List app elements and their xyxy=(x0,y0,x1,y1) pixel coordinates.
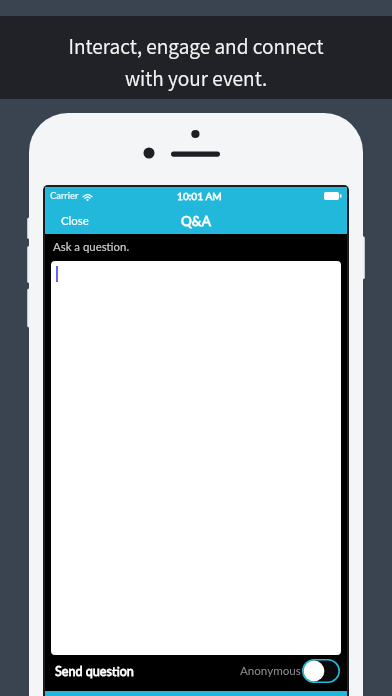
staticText: 10:01 AM xyxy=(177,190,222,202)
button[interactable]: Close xyxy=(45,209,101,233)
staticText: Interact, engage and connect with your e… xyxy=(0,32,392,92)
staticText: Close xyxy=(61,214,89,228)
other: Anonymous toggle xyxy=(302,659,340,683)
button[interactable] xyxy=(51,261,341,655)
button[interactable]: Send question xyxy=(55,664,134,679)
staticText: Q&A xyxy=(181,213,211,229)
staticText: Anonymous xyxy=(240,664,301,678)
staticText: Send question xyxy=(55,664,134,679)
staticText: Ask a question. xyxy=(53,240,130,254)
button[interactable]: Anonymous xyxy=(240,659,340,683)
staticText: Carrier xyxy=(50,190,79,201)
